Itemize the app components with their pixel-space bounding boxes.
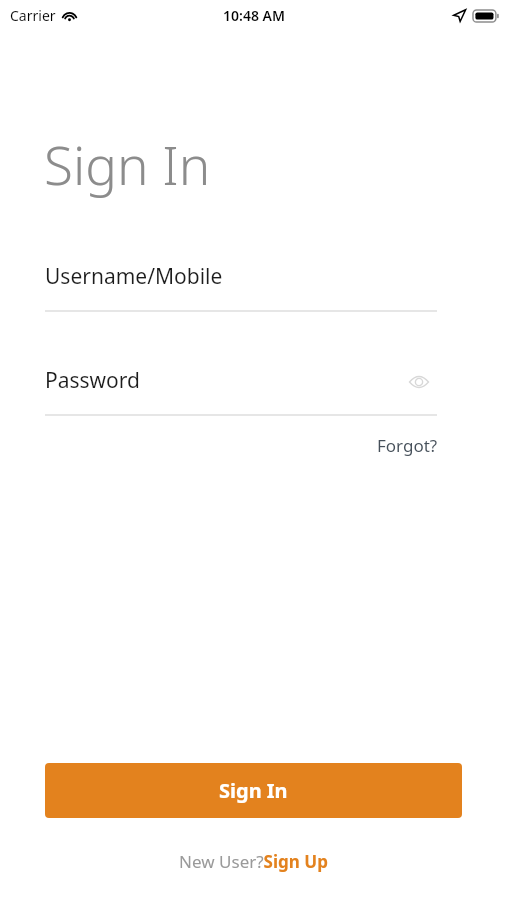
- staticText: Username/Mobile: [45, 262, 223, 291]
- staticText: Sign In: [219, 777, 288, 804]
- staticText: Carrier: [10, 6, 56, 25]
- button[interactable]: New User?Sign Up: [179, 850, 328, 873]
- button[interactable]: Password: [45, 366, 437, 416]
- button[interactable]: Forgot?: [358, 430, 438, 460]
- button[interactable]: Sign In: [45, 763, 462, 818]
- staticText: 10:48 AM: [223, 6, 285, 25]
- button[interactable]: Username/Mobile: [45, 262, 437, 312]
- staticText: Forgot?: [377, 434, 438, 457]
- button[interactable]: Show password: [403, 366, 435, 398]
- staticText: Sign In: [44, 128, 211, 200]
- staticText: Password: [45, 366, 140, 395]
- staticText: New User?Sign Up: [179, 850, 328, 873]
